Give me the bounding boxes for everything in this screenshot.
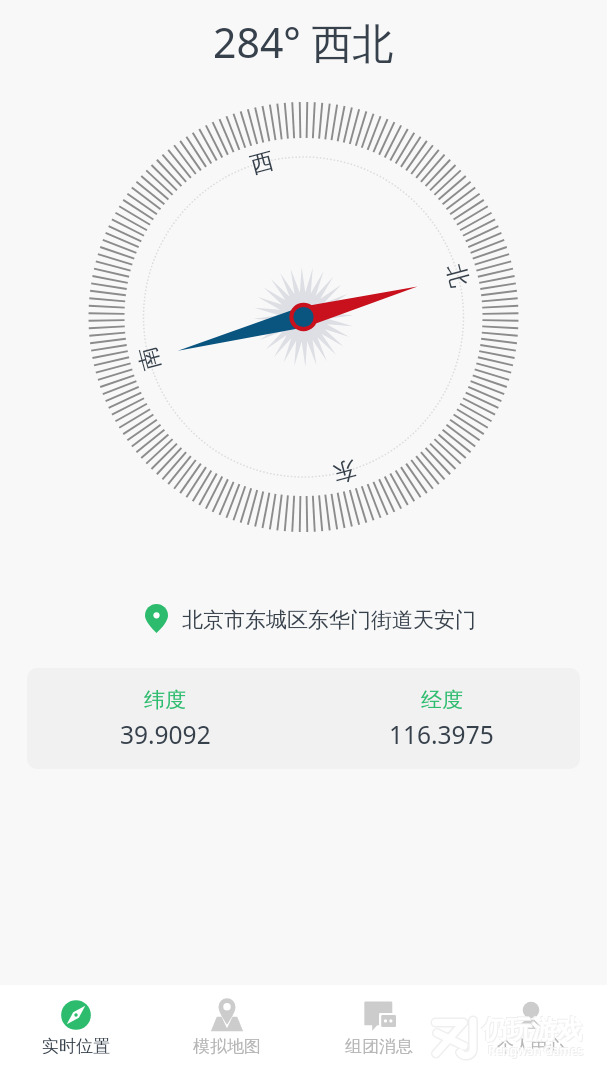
button[interactable]: Profile bbox=[455, 996, 607, 1059]
button[interactable]: Live location bbox=[0, 996, 151, 1059]
staticText: 模拟地图 bbox=[193, 1036, 261, 1057]
other: Profile bbox=[514, 998, 548, 1032]
staticText: 116.3975 bbox=[389, 718, 494, 751]
other: Simulated map bbox=[210, 998, 244, 1032]
other: Group messages bbox=[362, 998, 396, 1032]
staticText: 个人中心 bbox=[497, 1036, 565, 1057]
other: Live location bbox=[59, 998, 93, 1032]
button[interactable]: Group messages bbox=[303, 996, 455, 1059]
staticText: 实时位置 bbox=[42, 1036, 110, 1057]
staticText: 组团消息 bbox=[345, 1036, 413, 1057]
staticText: 经度 bbox=[421, 687, 463, 713]
staticText: 284° 西北 bbox=[213, 14, 394, 70]
staticText: 纬度 bbox=[144, 687, 186, 713]
staticText: 39.9092 bbox=[120, 718, 211, 751]
staticText: 北京市东城区东华门街道天安门 bbox=[182, 607, 476, 633]
button[interactable]: Simulated map bbox=[151, 996, 303, 1059]
